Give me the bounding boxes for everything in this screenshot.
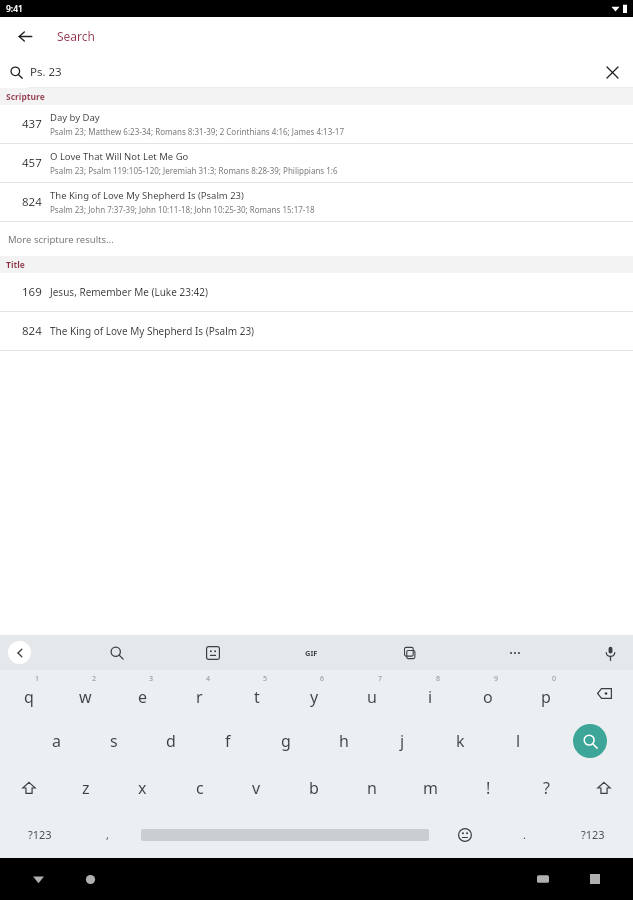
button[interactable]: Clear search <box>599 59 625 85</box>
button[interactable]: Recent apps <box>581 865 609 893</box>
button[interactable]: Shift <box>575 764 633 811</box>
button[interactable]: m <box>401 764 459 811</box>
staticText: 4 <box>206 674 211 684</box>
button[interactable]: Keyboard tool <box>499 637 531 669</box>
staticText: z <box>82 777 90 799</box>
button[interactable]: 457 <box>0 144 633 182</box>
button[interactable]: Search <box>547 717 633 764</box>
button[interactable]: d <box>142 717 199 764</box>
button[interactable]: z <box>57 764 114 811</box>
staticText: s <box>110 730 118 752</box>
staticText: 3 <box>149 674 154 684</box>
button[interactable]: v <box>228 764 285 811</box>
staticText: 824 <box>22 194 42 210</box>
staticText: 9:41 <box>6 3 23 15</box>
button[interactable]: ! <box>459 764 517 811</box>
button[interactable]: Home <box>76 865 104 893</box>
staticText: g <box>281 730 291 752</box>
button[interactable]: 437 <box>0 105 633 143</box>
button[interactable]: g <box>257 717 315 764</box>
button[interactable]: Keyboard tool <box>393 637 425 669</box>
button[interactable]: 169 <box>0 273 633 311</box>
staticText: 8 <box>436 674 441 684</box>
staticText: Scripture <box>6 91 45 103</box>
staticText: b <box>309 777 319 799</box>
button[interactable]: Back <box>24 865 52 893</box>
staticText: ? <box>543 777 550 799</box>
staticText: r <box>196 686 203 708</box>
other: Search icon <box>4 60 28 84</box>
button[interactable]: More scripture results... <box>0 222 633 256</box>
staticText: a <box>52 730 61 752</box>
button[interactable]: Emoji <box>433 811 496 858</box>
button[interactable]: Back <box>10 21 40 51</box>
staticText: 169 <box>22 284 42 300</box>
button[interactable]: Keyboard tool <box>295 637 327 669</box>
staticText: u <box>367 686 377 708</box>
staticText: ?123 <box>581 827 605 842</box>
button[interactable]: Comma <box>79 811 136 858</box>
button[interactable]: x <box>114 764 171 811</box>
staticText: x <box>138 777 147 799</box>
staticText: GIF <box>305 648 318 658</box>
staticText: ?123 <box>28 827 52 842</box>
button[interactable]: w <box>57 670 114 717</box>
button[interactable]: Collapse toolbar <box>8 641 31 664</box>
staticText: n <box>367 777 377 799</box>
staticText: The King of Love My Shepherd Is (Psalm 2… <box>50 189 244 202</box>
button[interactable]: n <box>343 764 401 811</box>
button[interactable]: Keyboard tool <box>197 637 229 669</box>
button[interactable]: Period <box>496 811 553 858</box>
staticText: w <box>79 686 92 708</box>
button[interactable]: q <box>0 670 57 717</box>
button[interactable]: Backspace <box>575 670 633 717</box>
staticText: k <box>456 730 465 752</box>
button[interactable]: e <box>114 670 171 717</box>
staticText: Psalm 23; Psalm 119:105-120; Jeremiah 31… <box>50 165 338 176</box>
button[interactable]: y <box>285 670 343 717</box>
button[interactable]: h <box>315 717 373 764</box>
staticText: Psalm 23; Matthew 6:23-34; Romans 8:31-3… <box>50 126 345 137</box>
staticText: v <box>252 777 261 799</box>
staticText: m <box>423 777 438 799</box>
button[interactable]: t <box>228 670 285 717</box>
button[interactable]: j <box>373 717 431 764</box>
button[interactable]: 824 <box>0 183 633 221</box>
button[interactable]: Keyboard tool <box>594 637 626 669</box>
staticText: Search <box>57 28 95 44</box>
button[interactable]: c <box>171 764 228 811</box>
staticText: 2 <box>92 674 97 684</box>
staticText: h <box>339 730 349 752</box>
button[interactable]: Switch keyboard <box>529 865 557 893</box>
staticText: c <box>196 777 204 799</box>
staticText: e <box>138 686 148 708</box>
button[interactable]: p <box>517 670 575 717</box>
button[interactable]: 824 <box>0 312 633 350</box>
button[interactable]: ? <box>517 764 575 811</box>
button[interactable]: u <box>343 670 401 717</box>
staticText: The King of Love My Shepherd Is (Psalm 2… <box>50 324 627 338</box>
staticText: Ps. 23 <box>30 64 62 80</box>
staticText: More scripture results... <box>8 233 114 246</box>
button[interactable]: s <box>85 717 142 764</box>
button[interactable]: b <box>285 764 343 811</box>
staticText: j <box>400 730 405 752</box>
button[interactable]: a <box>28 717 85 764</box>
button[interactable]: r <box>171 670 228 717</box>
staticText: 824 <box>22 323 42 339</box>
button[interactable]: o <box>459 670 517 717</box>
button[interactable]: Space <box>136 811 433 858</box>
button[interactable]: f <box>199 717 257 764</box>
button[interactable]: Keyboard tool <box>101 637 133 669</box>
button[interactable]: Shift <box>0 764 57 811</box>
staticText: ! <box>486 777 491 799</box>
staticText: Psalm 23; John 7:37-39; John 10:11-18; J… <box>50 204 315 215</box>
button[interactable]: ?123 <box>553 811 633 858</box>
button[interactable]: ?123 <box>0 811 79 858</box>
staticText: 5 <box>263 674 268 684</box>
staticText: 1 <box>35 674 40 684</box>
staticText: O Love That Will Not Let Me Go <box>50 150 189 163</box>
button[interactable]: l <box>489 717 547 764</box>
button[interactable]: k <box>431 717 489 764</box>
button[interactable]: i <box>401 670 459 717</box>
